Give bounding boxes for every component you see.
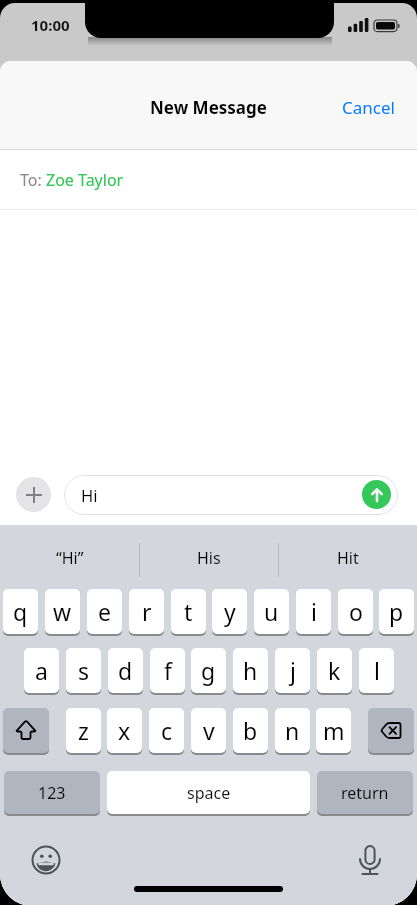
button[interactable]: d <box>108 648 143 693</box>
staticText: y <box>224 596 236 627</box>
button[interactable] <box>16 477 51 512</box>
button[interactable]: Cancel <box>330 94 410 120</box>
staticText: t <box>184 596 193 627</box>
button[interactable] <box>3 708 49 753</box>
staticText: h <box>243 655 258 686</box>
button[interactable]: To: <box>0 150 417 209</box>
staticText: space <box>187 782 231 804</box>
button[interactable]: e <box>87 589 122 634</box>
button[interactable]: s <box>66 648 101 693</box>
staticText: f <box>164 655 172 686</box>
button[interactable]: l <box>359 648 394 693</box>
staticText: x <box>118 715 131 746</box>
button[interactable]: h <box>233 648 268 693</box>
button[interactable] <box>28 842 64 878</box>
button[interactable]: u <box>254 589 289 634</box>
button[interactable]: w <box>45 589 80 634</box>
staticText: s <box>78 655 90 686</box>
staticText: Hi <box>81 484 98 506</box>
staticText: n <box>285 715 300 746</box>
button[interactable]: f <box>150 648 185 693</box>
button[interactable]: x <box>107 708 142 753</box>
button[interactable]: b <box>233 708 268 753</box>
button[interactable]: return <box>317 771 413 814</box>
button[interactable]: t <box>171 589 206 634</box>
staticText: p <box>389 596 404 627</box>
staticText: i <box>311 596 317 627</box>
button[interactable]: z <box>66 708 101 753</box>
button[interactable]: o <box>338 589 373 634</box>
button[interactable]: j <box>275 648 310 693</box>
button[interactable]: v <box>191 708 226 753</box>
staticText: u <box>264 596 279 627</box>
button[interactable]: n <box>275 708 310 753</box>
staticText: v <box>203 715 215 746</box>
staticText: c <box>161 715 173 746</box>
button[interactable]: y <box>212 589 247 634</box>
staticText: His <box>197 547 221 569</box>
staticText: Cancel <box>342 96 395 119</box>
staticText: z <box>78 715 89 746</box>
staticText: e <box>98 596 111 627</box>
button[interactable]: a <box>24 648 59 693</box>
button[interactable]: g <box>191 648 226 693</box>
button[interactable]: Hit <box>278 527 417 589</box>
button[interactable]: c <box>149 708 184 753</box>
staticText: b <box>243 715 258 746</box>
button[interactable]: k <box>317 648 352 693</box>
button[interactable]: space <box>107 771 310 814</box>
staticText: “Hi” <box>56 547 84 569</box>
staticText: w <box>53 596 72 627</box>
button[interactable] <box>352 842 388 878</box>
staticText: d <box>118 655 133 686</box>
staticText: 10:00 <box>31 15 70 35</box>
button[interactable]: m <box>316 708 351 753</box>
button[interactable] <box>368 708 414 753</box>
button[interactable]: p <box>379 589 414 634</box>
staticText: m <box>323 715 345 746</box>
staticText: Hit <box>337 547 359 569</box>
staticText: New Message <box>150 96 267 119</box>
button[interactable]: 123 <box>4 771 100 814</box>
staticText: g <box>201 655 216 686</box>
staticText: o <box>349 596 363 627</box>
staticText: q <box>13 596 28 627</box>
button[interactable] <box>362 480 391 509</box>
staticText: j <box>290 655 296 686</box>
button[interactable]: r <box>129 589 164 634</box>
staticText: r <box>142 596 152 627</box>
staticText: return <box>341 782 389 804</box>
button[interactable]: “Hi” <box>0 527 139 589</box>
button[interactable]: His <box>139 527 278 589</box>
button[interactable]: q <box>3 589 38 634</box>
staticText: a <box>35 655 48 686</box>
button[interactable]: i <box>296 589 331 634</box>
staticText: To: <box>20 169 46 191</box>
staticText: 123 <box>38 782 66 804</box>
staticText: l <box>374 655 380 686</box>
staticText: Zoe Taylor <box>46 169 124 191</box>
staticText: k <box>328 655 341 686</box>
